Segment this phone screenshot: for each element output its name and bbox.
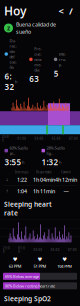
staticText: 03:00 xyxy=(33,248,42,252)
staticText: 05:00 xyxy=(52,137,61,140)
staticText: / xyxy=(69,5,73,17)
staticText: 01:00 xyxy=(17,137,26,140)
staticText: Interrup. xyxy=(59,51,66,67)
staticText: Interrupc. xyxy=(15,171,29,174)
staticText: < xyxy=(58,5,63,17)
staticText: 07:00 xyxy=(68,248,77,252)
staticText: ♥ xyxy=(37,256,42,263)
staticText: 23:00 xyxy=(3,246,10,253)
staticText: 60% Sueño pr... xyxy=(9,145,27,156)
staticText: 1h 04min xyxy=(33,176,55,183)
staticText: ♥ xyxy=(13,256,18,263)
staticText: 3:55 xyxy=(4,157,21,167)
staticText: ♥ xyxy=(62,256,67,263)
staticText: Buena calidad de sueño xyxy=(16,21,56,35)
staticText: 51 PPM xyxy=(33,263,46,269)
staticText: — xyxy=(63,188,68,195)
staticText: 05:00 xyxy=(51,248,60,252)
staticText: Hoy xyxy=(4,3,27,19)
button[interactable]: Edit xyxy=(66,6,76,16)
staticText: 23:00 xyxy=(2,135,9,142)
staticText: Sleeping SpO2 xyxy=(4,294,51,303)
staticText: ↑ xyxy=(5,189,8,193)
staticText: Caminó xyxy=(61,171,71,174)
staticText: z xyxy=(7,24,10,32)
staticText: Frecuencia media xyxy=(34,46,41,73)
staticText: 63 xyxy=(29,74,39,84)
staticText: 1:32 xyxy=(41,157,58,167)
staticText: 28% Sueño lig... xyxy=(46,145,64,156)
staticText: h xyxy=(15,79,17,84)
staticText: 07:00 xyxy=(69,137,78,140)
button[interactable]: Share xyxy=(56,6,66,16)
staticText: 80% Below resting heart rate xyxy=(5,283,55,288)
staticText: Despertado xyxy=(36,171,52,174)
staticText: Sleeping heart rate xyxy=(4,200,52,217)
staticText: 1:04 xyxy=(17,188,27,195)
staticText: h xyxy=(22,160,24,165)
staticText: 104 PPM xyxy=(57,263,72,269)
staticText: 1:22 xyxy=(17,176,27,183)
staticText: ↓ xyxy=(5,177,8,182)
staticText: 63 PPM xyxy=(9,263,22,269)
staticText: 6:32 xyxy=(4,71,14,92)
staticText: Duración del sueño xyxy=(9,38,16,70)
staticText: h xyxy=(59,160,61,165)
staticText: 65% Below average xyxy=(5,274,39,279)
staticText: 03:00 xyxy=(34,137,43,140)
staticText: 5 xyxy=(54,68,59,79)
staticText: 1h 11min xyxy=(33,188,55,195)
staticText: 4h 12min xyxy=(55,176,77,183)
staticText: 01:00 xyxy=(18,246,25,253)
